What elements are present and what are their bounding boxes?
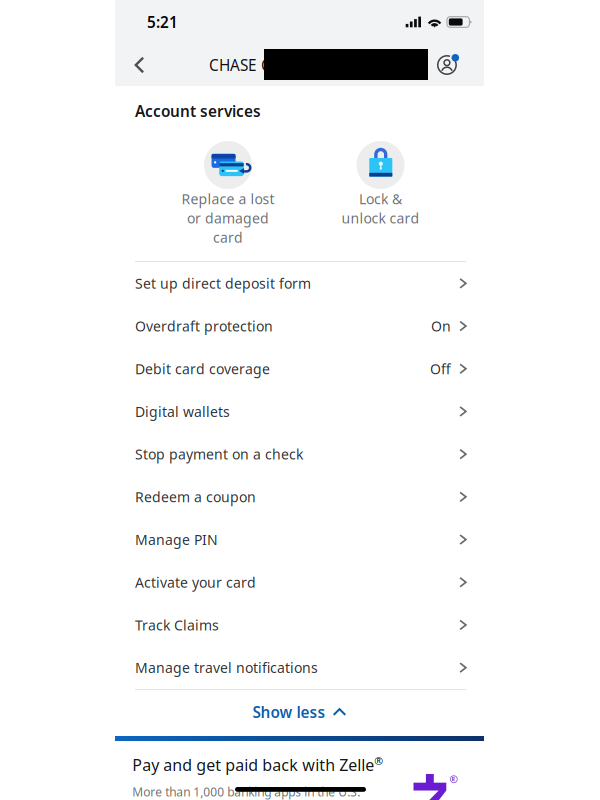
button[interactable]: Manage PIN — [115, 518, 484, 561]
button[interactable]: Replace a lost or damaged card — [152, 136, 304, 247]
staticText: Debit card coverage — [135, 359, 270, 378]
staticText: Show less — [252, 702, 325, 722]
staticText: Activate your card — [135, 573, 256, 592]
staticText: On — [431, 316, 451, 336]
button[interactable]: Stop payment on a check — [115, 433, 484, 475]
staticText: Account services — [135, 101, 261, 121]
staticText: ® — [374, 753, 383, 768]
staticText: Track Claims — [135, 615, 219, 634]
button[interactable]: Activate your card — [115, 561, 484, 604]
button[interactable]: Lock and unlock card — [304, 136, 457, 247]
staticText: Set up direct deposit form — [135, 274, 311, 293]
button[interactable]: Track Claims — [115, 604, 484, 646]
staticText: CHASE C — [209, 55, 271, 75]
staticText: Replace a lost — [182, 189, 275, 208]
button[interactable]: Manage travel notifications — [115, 646, 484, 689]
staticText: card — [213, 228, 243, 247]
staticText: Stop payment on a check — [135, 445, 303, 464]
staticText: 5:21 — [147, 12, 178, 32]
button[interactable]: Back — [134, 44, 170, 86]
button[interactable]: Digital wallets — [115, 390, 484, 433]
staticText: Manage PIN — [135, 530, 218, 549]
button[interactable]: Overdraft protection — [115, 305, 484, 347]
button[interactable]: Redeem a coupon — [115, 475, 484, 518]
staticText: Redeem a coupon — [135, 487, 256, 506]
staticText: Digital wallets — [135, 402, 230, 421]
staticText: Overdraft protection — [135, 316, 273, 336]
button[interactable]: Profile — [432, 44, 464, 86]
staticText: or damaged — [187, 208, 269, 228]
staticText: More than 1,000 banking apps in the U.S. — [132, 784, 360, 800]
staticText: Off — [430, 359, 451, 378]
staticText: unlock card — [342, 208, 420, 228]
staticText: Pay and get paid back with Zelle — [132, 754, 374, 776]
button[interactable]: Debit card coverage — [115, 347, 484, 390]
button[interactable]: Show less — [115, 690, 484, 734]
button[interactable]: Set up direct deposit form — [115, 262, 484, 305]
staticText: Manage travel notifications — [135, 658, 318, 677]
staticText: Lock & — [359, 189, 402, 208]
